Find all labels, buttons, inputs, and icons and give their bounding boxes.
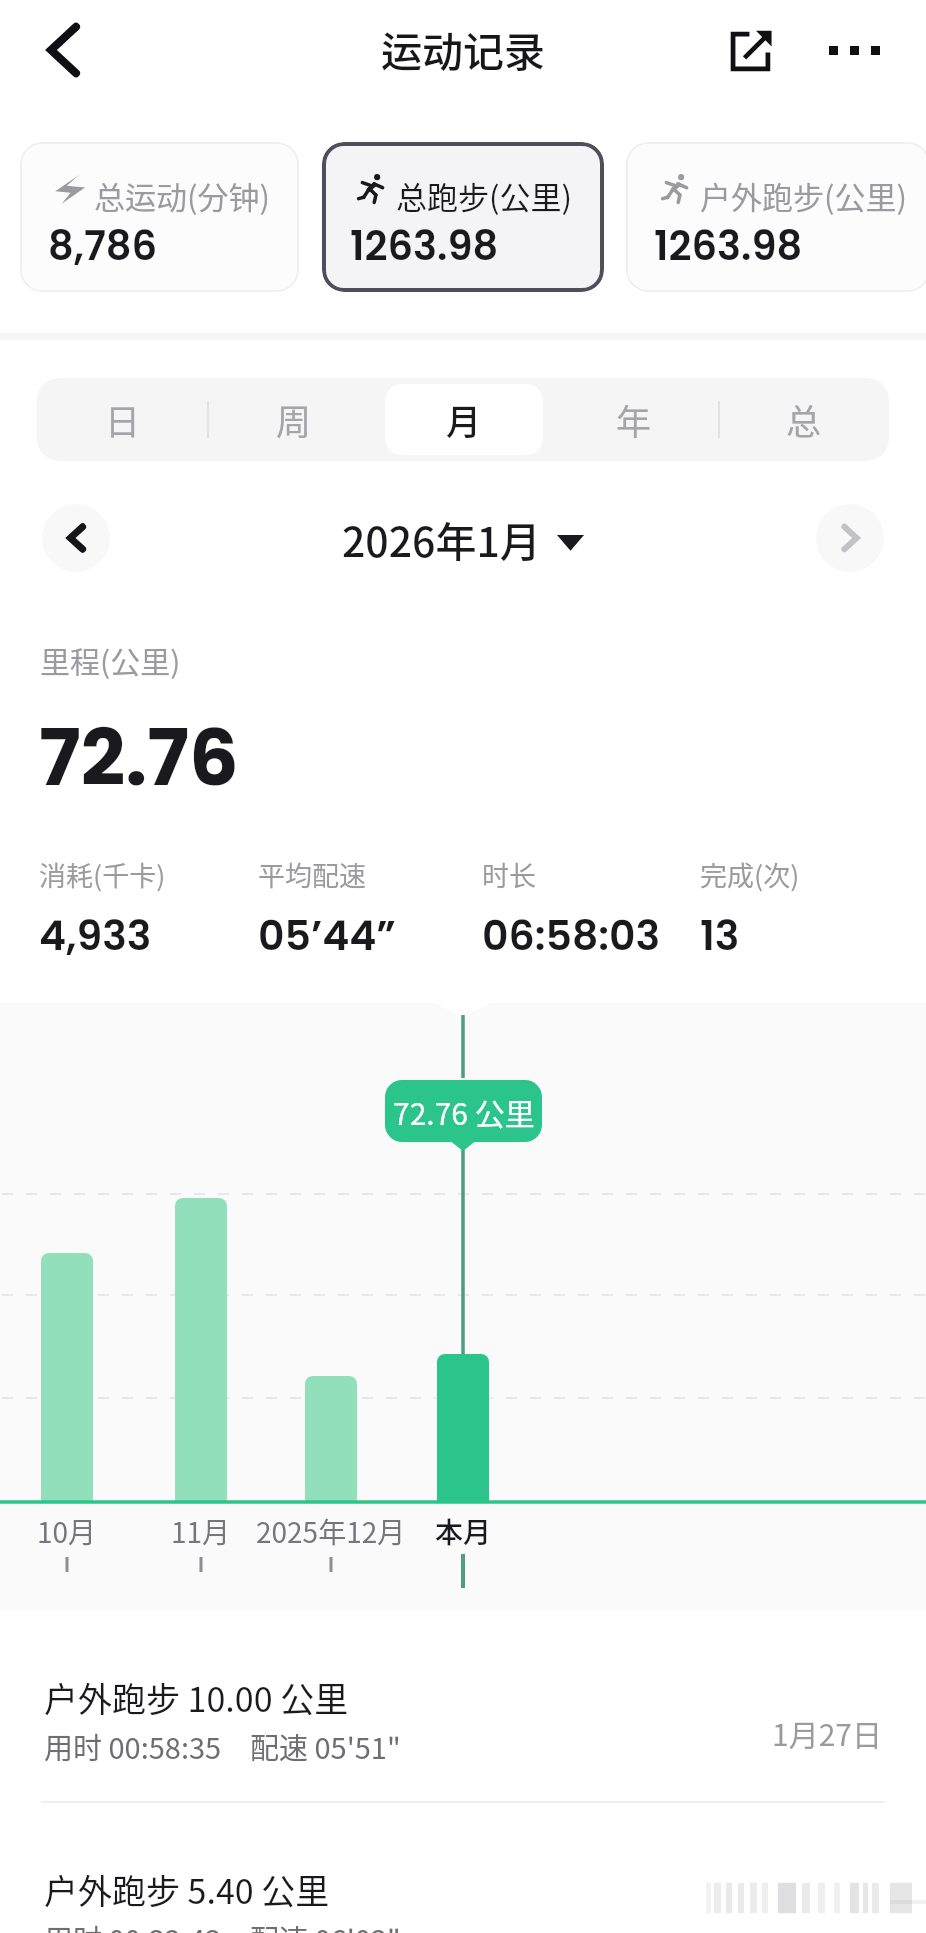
staticText: 运动记录	[381, 19, 545, 78]
button[interactable]: 年	[555, 384, 713, 455]
button[interactable]: 日	[43, 384, 202, 455]
staticText: 总运动(分钟)	[94, 173, 270, 218]
staticText: 月	[446, 394, 482, 445]
button[interactable]: 总运动(分钟)	[20, 142, 299, 292]
staticText: 户外跑步 10.00 公里	[44, 1673, 349, 1722]
staticText: 2026年1月	[342, 509, 541, 568]
staticText: 日	[105, 394, 141, 445]
staticText: 11月	[171, 1511, 231, 1551]
button[interactable]: Back	[29, 16, 97, 84]
staticText: 总	[786, 394, 822, 445]
staticText: 8,786	[48, 218, 158, 274]
staticText: 72.76 公里	[393, 1090, 535, 1133]
staticText: 户外跑步 5.40 公里	[44, 1865, 330, 1914]
staticText: 完成(次)	[700, 855, 800, 894]
staticText: 年	[616, 394, 652, 445]
button[interactable]: 总	[725, 384, 883, 455]
button[interactable]: 户外跑步(公里)	[626, 142, 926, 292]
staticText: 72.76	[39, 703, 239, 812]
staticText: 时长	[482, 855, 536, 894]
button[interactable]: 月	[385, 384, 543, 455]
staticText: 10月	[37, 1511, 97, 1551]
button[interactable]: Next month	[816, 504, 884, 572]
staticText: 2025年12月	[256, 1511, 406, 1551]
staticText: 户外跑步(公里)	[700, 173, 907, 218]
staticText: 总跑步(公里)	[396, 173, 572, 218]
staticText: 配速 06'03"	[250, 1917, 401, 1933]
button[interactable]: 户外跑步 5.40 公里	[0, 1821, 926, 1933]
staticText: 1263.98	[654, 218, 803, 274]
staticText: 05’44”	[258, 907, 396, 964]
staticText: 周	[276, 394, 312, 445]
staticText: 里程(公里)	[40, 638, 181, 681]
staticText: 用时 00:58:35	[44, 1725, 222, 1767]
button[interactable]: Share	[713, 12, 789, 88]
staticText: 消耗(千卡)	[39, 855, 166, 894]
button[interactable]: 户外跑步 10.00 公里	[0, 1629, 926, 1807]
button[interactable]: Previous month	[42, 504, 110, 572]
button[interactable]: 周	[214, 384, 373, 455]
staticText: 1月27日	[772, 1711, 882, 1754]
staticText: 用时 00:32:43	[44, 1917, 222, 1933]
staticText: 06:58:03	[482, 907, 661, 964]
staticText: 4,933	[39, 907, 152, 964]
button[interactable]: More options	[816, 12, 892, 88]
staticText: 平均配速	[258, 855, 366, 894]
staticText: 配速 05'51"	[250, 1725, 401, 1767]
staticText: 本月	[435, 1511, 492, 1551]
staticText: 13	[700, 907, 740, 964]
button[interactable]: 总跑步(公里)	[322, 142, 604, 292]
staticText: 1263.98	[350, 218, 499, 274]
